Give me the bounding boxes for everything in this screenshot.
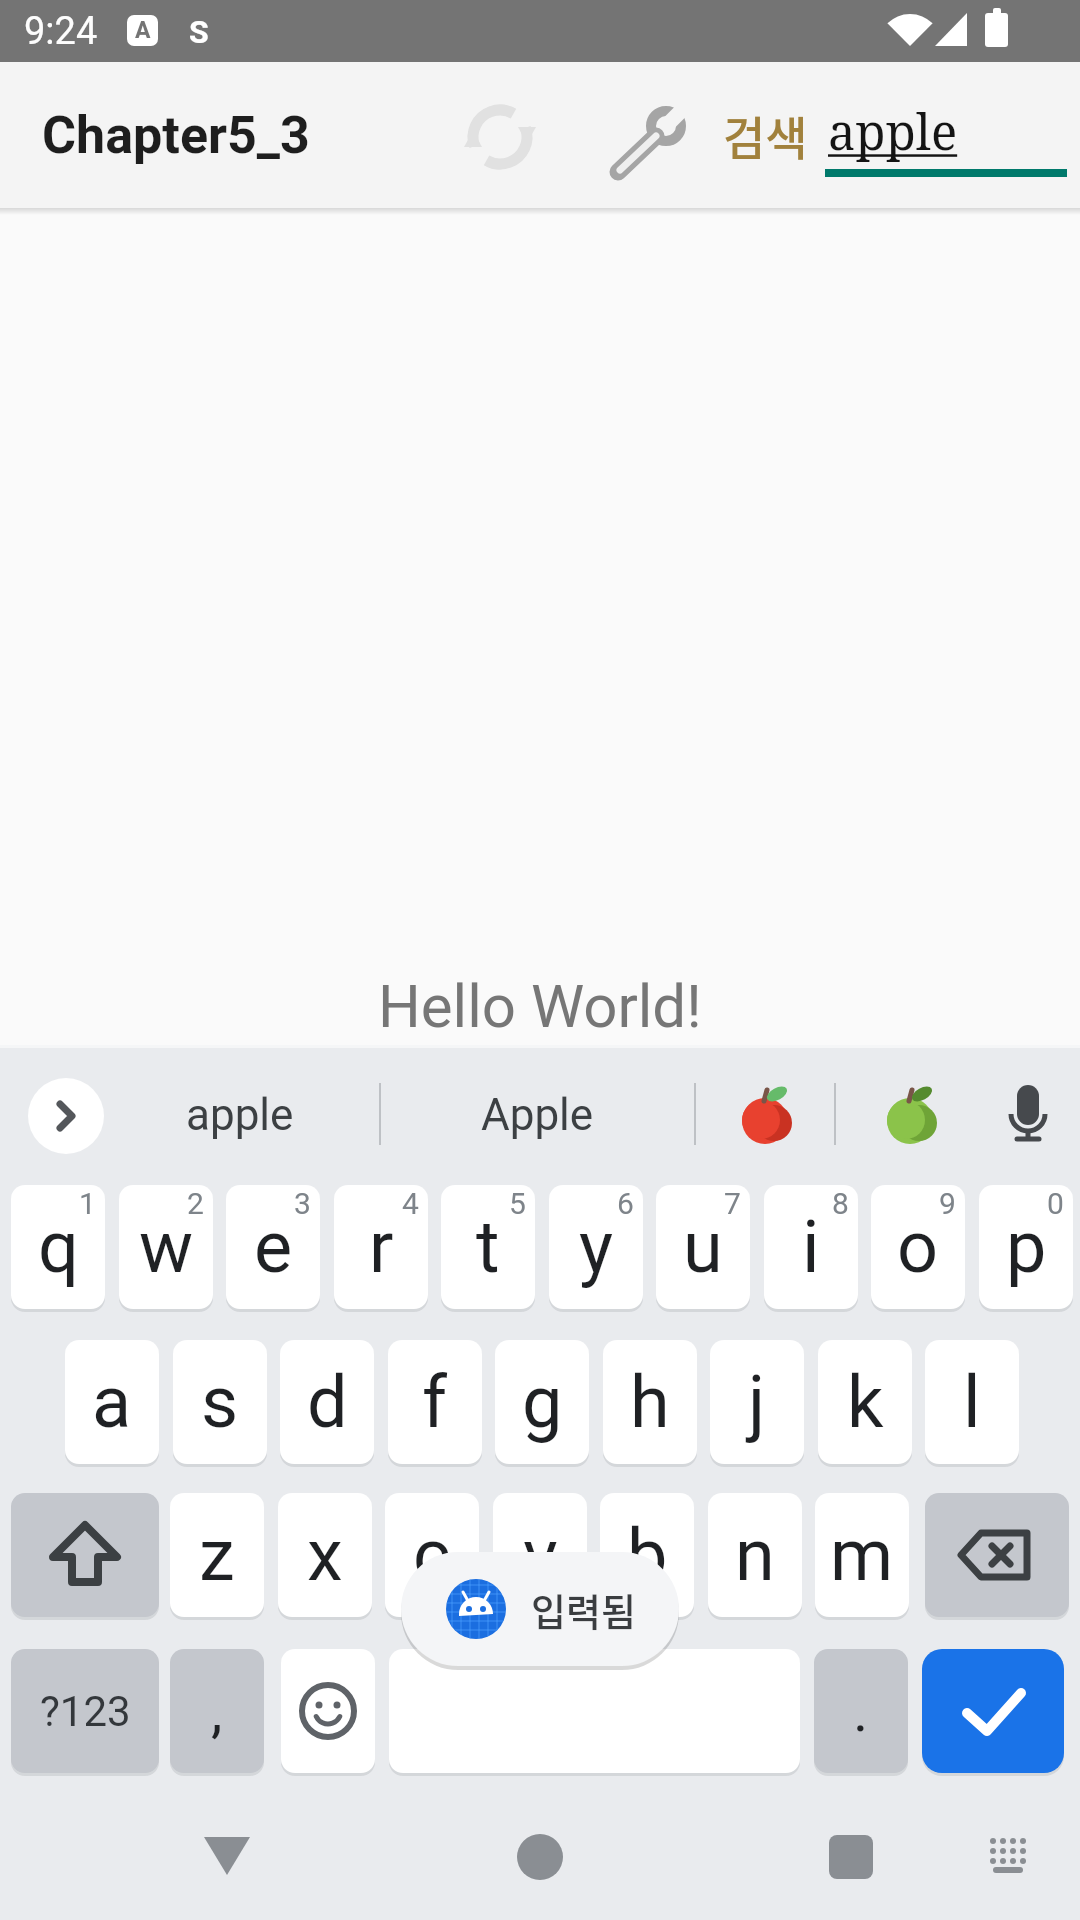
staticText: 5: [509, 1186, 526, 1221]
staticText: 8: [832, 1186, 849, 1221]
button[interactable]: r: [334, 1185, 428, 1309]
staticText: w: [139, 1205, 194, 1289]
button[interactable]: [455, 92, 545, 182]
button[interactable]: k: [818, 1340, 912, 1464]
staticText: g: [522, 1360, 563, 1444]
button[interactable]: s: [173, 1340, 267, 1464]
staticText: 0: [1047, 1186, 1064, 1221]
staticText: p: [1006, 1205, 1047, 1289]
staticText: n: [735, 1513, 775, 1597]
button[interactable]: ,: [170, 1649, 264, 1773]
staticText: l: [963, 1360, 981, 1444]
button[interactable]: [389, 1649, 800, 1773]
staticText: x: [307, 1513, 343, 1597]
button[interactable]: u: [656, 1185, 750, 1309]
staticText: 9: [939, 1186, 956, 1221]
button[interactable]: d: [280, 1340, 374, 1464]
staticText: 2: [187, 1186, 204, 1221]
staticText: h: [630, 1360, 670, 1444]
button[interactable]: v: [493, 1493, 587, 1617]
button[interactable]: h: [603, 1340, 697, 1464]
button[interactable]: p: [979, 1185, 1073, 1309]
staticText: q: [38, 1205, 79, 1289]
button[interactable]: [28, 1078, 104, 1154]
staticText: ,: [211, 1677, 223, 1745]
staticText: a: [92, 1360, 132, 1444]
button[interactable]: [281, 1649, 375, 1773]
staticText: y: [579, 1205, 614, 1289]
staticText: k: [847, 1360, 884, 1444]
button[interactable]: [983, 1833, 1033, 1877]
staticText: m: [830, 1513, 894, 1597]
button[interactable]: l: [925, 1340, 1019, 1464]
button[interactable]: .: [814, 1649, 908, 1773]
staticText: 입력됨: [531, 1582, 636, 1637]
staticText: apple: [186, 1089, 294, 1141]
button[interactable]: x: [278, 1493, 372, 1617]
staticText: t: [476, 1205, 500, 1289]
button[interactable]: g: [495, 1340, 589, 1464]
staticText: c: [413, 1513, 451, 1597]
button[interactable]: o: [871, 1185, 965, 1309]
staticText: S: [189, 13, 209, 49]
staticText: f: [422, 1360, 448, 1444]
staticText: 6: [617, 1186, 634, 1221]
staticText: 9:24: [24, 9, 98, 54]
staticText: s: [201, 1360, 239, 1444]
button[interactable]: t: [441, 1185, 535, 1309]
staticText: z: [199, 1513, 235, 1597]
button[interactable]: e: [226, 1185, 320, 1309]
staticText: ?123: [40, 1687, 131, 1736]
button[interactable]: [998, 1081, 1058, 1149]
staticText: .: [853, 1677, 869, 1745]
button[interactable]: q: [11, 1185, 105, 1309]
button[interactable]: c: [385, 1493, 479, 1617]
staticText: apple: [828, 98, 958, 165]
button[interactable]: 입력됨: [401, 1552, 679, 1666]
button[interactable]: Apple: [437, 1045, 637, 1185]
button[interactable]: [200, 1834, 254, 1880]
staticText: j: [748, 1360, 766, 1444]
button[interactable]: w: [119, 1185, 213, 1309]
button[interactable]: n: [708, 1493, 802, 1617]
staticText: i: [802, 1205, 820, 1289]
staticText: 3: [294, 1186, 311, 1221]
staticText: Chapter5_3: [42, 105, 310, 166]
staticText: u: [683, 1205, 723, 1289]
staticText: 7: [724, 1186, 741, 1221]
button[interactable]: i: [764, 1185, 858, 1309]
button[interactable]: [925, 1493, 1069, 1617]
staticText: b: [627, 1513, 668, 1597]
staticText: Apple: [481, 1089, 594, 1141]
staticText: 1: [79, 1186, 96, 1221]
staticText: e: [254, 1205, 293, 1289]
staticText: v: [523, 1513, 558, 1597]
button[interactable]: [11, 1493, 159, 1617]
button[interactable]: [735, 1085, 795, 1145]
button[interactable]: [606, 108, 696, 178]
button[interactable]: [517, 1834, 563, 1880]
staticText: 4: [402, 1186, 419, 1221]
button[interactable]: [829, 1835, 873, 1879]
button[interactable]: y: [549, 1185, 643, 1309]
staticText: o: [897, 1205, 939, 1289]
button[interactable]: z: [170, 1493, 264, 1617]
button[interactable]: [922, 1649, 1064, 1773]
button[interactable]: a: [65, 1340, 159, 1464]
staticText: 검색: [723, 102, 808, 169]
button[interactable]: m: [815, 1493, 909, 1617]
staticText: d: [307, 1360, 348, 1444]
staticText: A: [135, 17, 151, 44]
button[interactable]: f: [388, 1340, 482, 1464]
button[interactable]: apple: [825, 62, 1070, 208]
button[interactable]: b: [600, 1493, 694, 1617]
button[interactable]: apple: [140, 1045, 340, 1185]
staticText: Hello World!: [378, 971, 702, 1041]
button[interactable]: ?123: [11, 1649, 159, 1773]
button[interactable]: j: [710, 1340, 804, 1464]
staticText: r: [369, 1205, 394, 1289]
button[interactable]: [880, 1085, 940, 1145]
